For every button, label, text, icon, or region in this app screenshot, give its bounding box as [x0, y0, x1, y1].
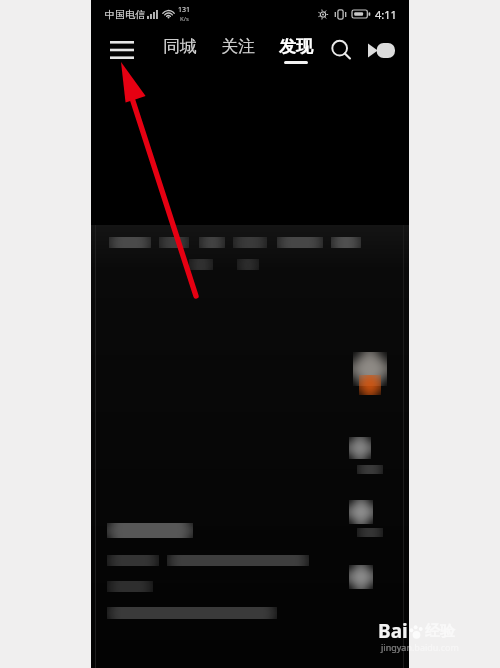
staticText: 同城 — [163, 36, 197, 57]
staticText: 4:11 — [375, 7, 397, 22]
button[interactable]: 同城 — [155, 33, 205, 67]
staticText: 中国电信 — [105, 8, 145, 21]
staticText: jingyan.baidu.com — [381, 641, 459, 653]
button[interactable]: Live — [361, 34, 401, 66]
staticText: 131 — [178, 5, 191, 15]
staticText: Bai — [378, 618, 408, 644]
button[interactable]: Search — [323, 32, 359, 68]
staticText: K/s — [180, 15, 189, 23]
button[interactable]: 关注 — [213, 33, 263, 67]
button[interactable]: 发现 — [271, 33, 321, 67]
staticText: 发现 — [279, 36, 313, 57]
staticText: 经验 — [425, 622, 455, 641]
staticText: 关注 — [221, 36, 255, 57]
button[interactable]: Menu — [103, 33, 141, 67]
